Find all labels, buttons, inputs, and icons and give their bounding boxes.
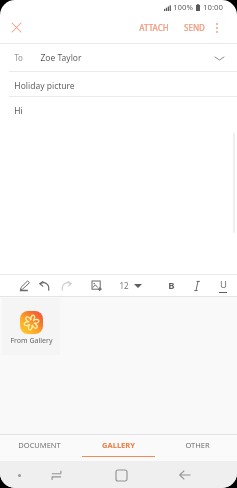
button[interactable]: Recents [46,465,66,485]
button[interactable]: Menu [10,466,28,484]
staticText: 12 [119,280,129,291]
button[interactable]: Draw [14,275,35,296]
button[interactable]: Home [111,465,131,485]
staticText: SEND [184,22,205,33]
button[interactable]: SEND [182,16,207,39]
staticText: U [220,278,227,291]
staticText: DOCUMENT [18,440,61,450]
staticText: ATTACH [139,22,169,33]
button[interactable]: Underline [212,275,233,296]
button[interactable]: Bold [161,275,182,296]
button[interactable]: ATTACH [137,16,171,39]
staticText: Zoe Taylor [40,52,82,64]
staticText: 100% [173,2,193,13]
staticText: 10:00 [203,2,223,13]
button[interactable]: Redo [56,275,77,296]
button[interactable]: Expand recipients [210,49,228,67]
button[interactable]: OTHER [158,435,237,461]
button[interactable]: From Gallery [2,298,60,355]
staticText: B [168,279,175,292]
button[interactable]: Back [175,465,195,485]
staticText: Holiday picture [14,80,75,92]
staticText: From Gallery [10,336,53,346]
button[interactable]: Close [6,17,27,38]
staticText: GALLERY [102,440,135,450]
staticText: OTHER [185,440,210,450]
button[interactable]: More options [207,18,226,37]
button[interactable]: DOCUMENT [0,435,79,461]
staticText: To [14,52,23,63]
button[interactable]: GALLERY [79,435,158,461]
button[interactable]: Undo [34,275,55,296]
button[interactable]: 12 [116,277,145,294]
button[interactable]: Insert image [86,275,107,296]
staticText: Hi [14,105,23,117]
button[interactable]: Italic [186,275,207,296]
